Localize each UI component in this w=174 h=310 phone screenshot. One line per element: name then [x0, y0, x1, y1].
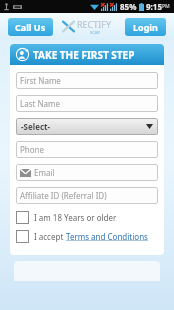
staticText: Phone: [20, 144, 45, 155]
button[interactable]: Last Name: [16, 95, 158, 112]
staticText: PM: [162, 3, 170, 10]
button[interactable]: Call Us: [8, 18, 53, 36]
staticText: Terms and Conditions: [66, 231, 148, 242]
staticText: -Select-: [21, 121, 51, 132]
staticText: TAKE THE FIRST STEP: [33, 48, 135, 62]
button[interactable]: Affiliate ID (Referral ID): [16, 187, 158, 204]
staticText: Email: [34, 167, 55, 178]
button[interactable]: -Select-: [16, 118, 158, 135]
staticText: Call Us: [15, 21, 46, 33]
staticText: Login: [133, 21, 158, 33]
button[interactable]: I accept: [16, 230, 158, 243]
other: I accept: [16, 230, 29, 243]
staticText: 85%: [120, 1, 137, 12]
staticText: I am 18 Years or older: [34, 212, 117, 223]
button[interactable]: First Name: [16, 72, 158, 89]
staticText: First Name: [20, 75, 61, 86]
staticText: RECTIFY: [77, 18, 112, 30]
staticText: Last Name: [20, 98, 61, 109]
staticText: Affiliate ID (Referral ID): [20, 190, 107, 201]
button[interactable]: I am 18 Years or older: [16, 211, 158, 224]
staticText: 9:15: [146, 1, 162, 12]
button[interactable]: Phone: [16, 141, 158, 158]
other: I am 18 Years or older: [16, 211, 29, 224]
staticText: I accept: [34, 231, 66, 242]
button[interactable]: Email: [16, 164, 158, 181]
button[interactable]: Login: [125, 18, 166, 36]
staticText: SCAR: [90, 30, 100, 35]
